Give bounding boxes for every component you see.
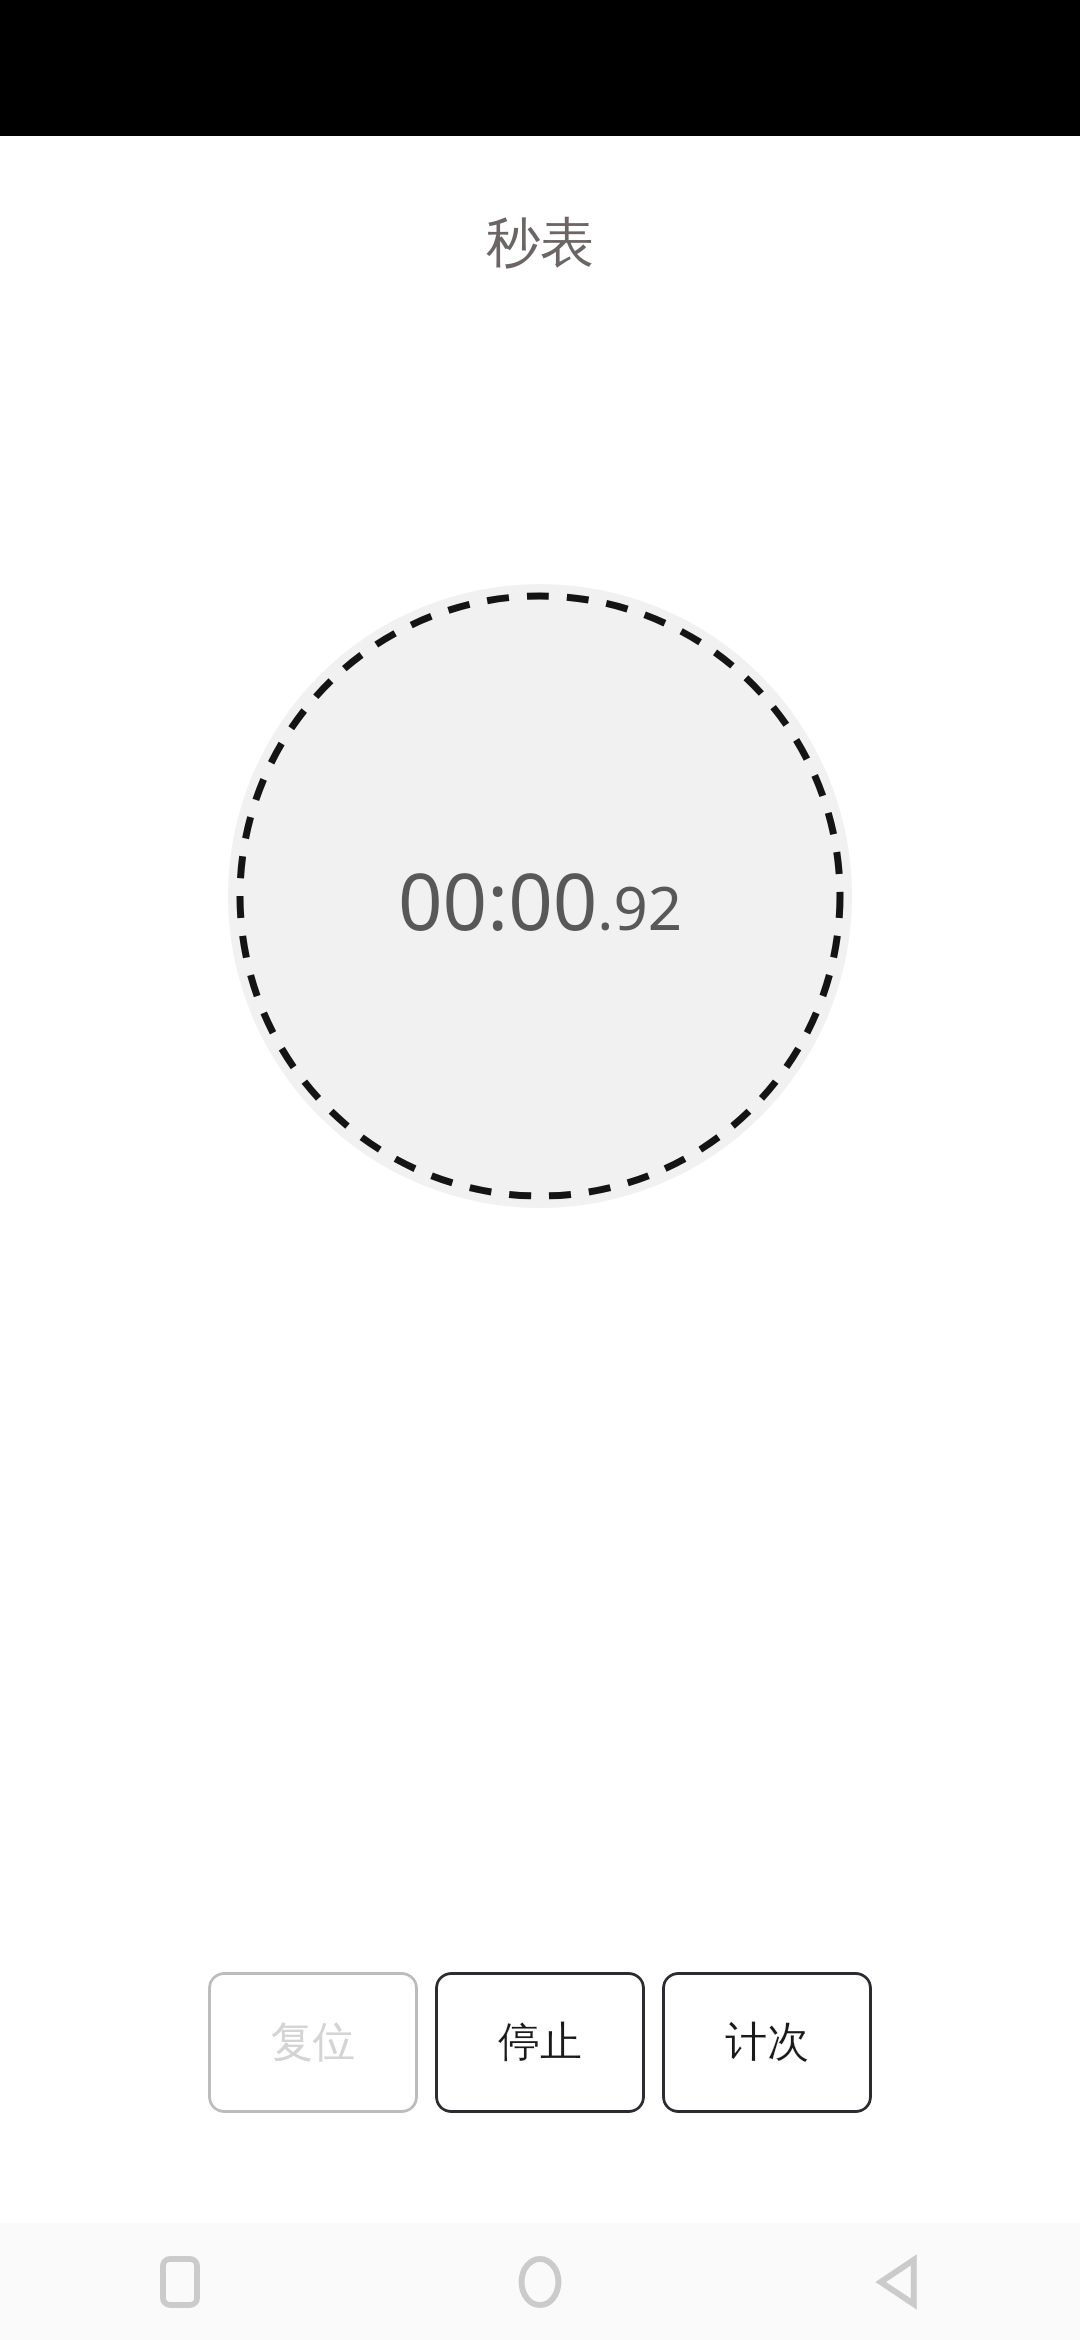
button[interactable]: Recent apps: [0, 2223, 360, 2340]
staticText: 复位: [271, 2016, 355, 2069]
button[interactable]: Home: [360, 2223, 720, 2340]
staticText: 计次: [725, 2016, 809, 2069]
staticText: 停止: [498, 2016, 582, 2069]
button[interactable]: 计次: [662, 1972, 872, 2113]
button[interactable]: Back: [720, 2223, 1080, 2340]
staticText: 00:00.92: [398, 847, 683, 953]
button[interactable]: 停止: [435, 1972, 645, 2113]
button[interactable]: 复位: [208, 1972, 418, 2113]
staticText: 秒表: [486, 209, 594, 277]
